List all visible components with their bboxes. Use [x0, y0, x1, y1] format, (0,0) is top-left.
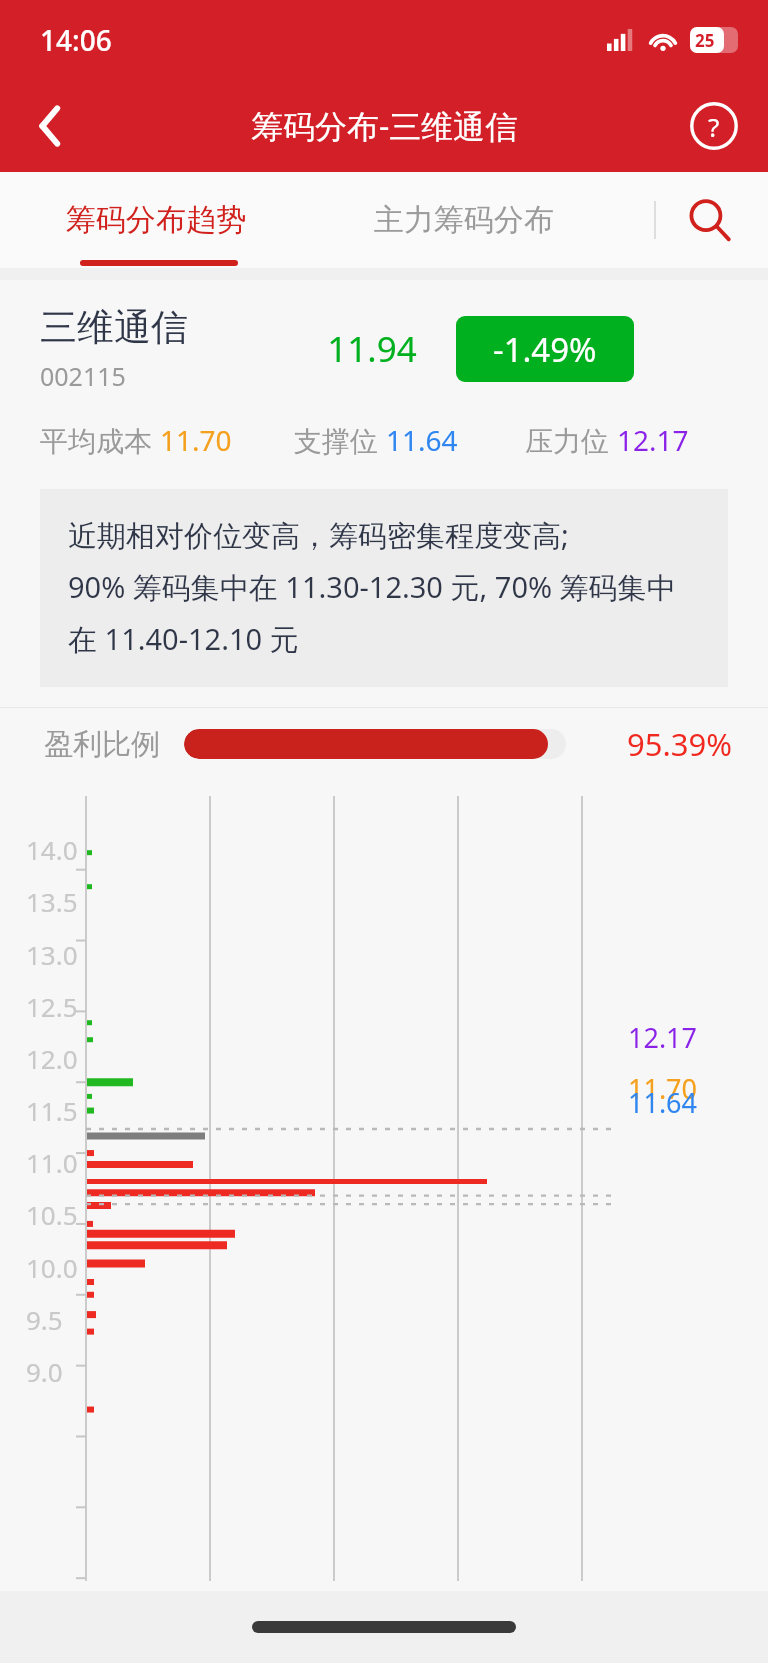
- staticText: 近期相对价位变高，筹码密集程度变高;: [68, 515, 569, 555]
- staticText: 平均成本: [40, 421, 160, 459]
- staticText: 13.5: [26, 884, 78, 919]
- staticText: 12.17: [617, 421, 689, 459]
- staticText: 25: [695, 29, 715, 52]
- staticText: 9.0: [26, 1354, 63, 1389]
- staticText: 10.5: [26, 1197, 78, 1232]
- button[interactable]: Search: [674, 185, 744, 255]
- staticText: 14:06: [40, 21, 112, 59]
- staticText: 11.0: [26, 1145, 78, 1180]
- staticText: 002115: [40, 359, 126, 393]
- button[interactable]: Back: [16, 92, 84, 160]
- staticText: 盈利比例: [44, 726, 160, 763]
- staticText: 11.5: [26, 1093, 78, 1128]
- staticText: 12.5: [26, 989, 78, 1024]
- staticText: 95.39%: [590, 723, 732, 765]
- staticText: 12.17: [628, 1019, 698, 1056]
- staticText: -1.49%: [493, 327, 597, 372]
- staticText: 压力位: [525, 421, 617, 459]
- staticText: 在 11.40-12.10 元: [68, 619, 299, 659]
- staticText: 主力筹码分布: [374, 201, 554, 239]
- staticText: 筹码分布-三维通信: [251, 104, 518, 148]
- staticText: 11.64: [386, 421, 458, 459]
- staticText: 支撑位: [294, 421, 386, 459]
- staticText: ?: [708, 109, 720, 144]
- button[interactable]: 筹码分布趋势: [66, 201, 246, 239]
- staticText: 三维通信: [40, 304, 188, 351]
- staticText: 10.0: [26, 1250, 78, 1285]
- staticText: 11.64: [628, 1084, 698, 1121]
- staticText: 12.0: [26, 1041, 78, 1076]
- button[interactable]: -1.49%: [456, 316, 634, 382]
- staticText: 9.5: [26, 1302, 63, 1337]
- button[interactable]: 主力筹码分布: [374, 201, 554, 239]
- staticText: 11.70: [628, 1070, 698, 1107]
- staticText: 筹码分布趋势: [66, 201, 246, 239]
- staticText: 14.0: [26, 832, 78, 867]
- staticText: 90% 筹码集中在 11.30-12.30 元, 70% 筹码集中: [68, 567, 676, 607]
- staticText: 13.0: [26, 937, 78, 972]
- staticText: 11.70: [160, 421, 232, 459]
- button[interactable]: Help: [682, 94, 746, 158]
- staticText: 11.94: [288, 325, 456, 373]
